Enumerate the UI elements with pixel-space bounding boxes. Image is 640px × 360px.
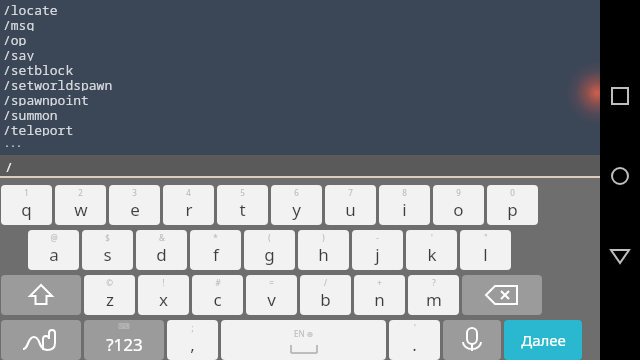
staticText: /	[324, 277, 327, 288]
button[interactable]: 9	[433, 185, 484, 225]
staticText: y	[292, 198, 301, 221]
staticText: 2	[78, 187, 83, 198]
button[interactable]: '	[389, 320, 440, 360]
staticText: '	[414, 322, 416, 333]
button[interactable]: $	[82, 230, 133, 270]
staticText: u	[345, 198, 356, 221]
staticText: +	[377, 277, 382, 288]
staticText: t	[239, 198, 246, 221]
button[interactable]: 5	[217, 185, 268, 225]
button[interactable]: EN ⊕	[221, 320, 386, 360]
staticText: /setblock	[3, 61, 74, 76]
button[interactable]: 4	[163, 185, 214, 225]
staticText: ⌨	[118, 322, 130, 331]
staticText: r	[185, 198, 193, 221]
staticText: !	[162, 277, 165, 288]
button[interactable]: "	[460, 230, 511, 270]
staticText: (	[268, 232, 271, 243]
staticText: /spawnpoint	[3, 91, 89, 106]
button[interactable]: #	[192, 275, 243, 315]
staticText: ?	[432, 277, 436, 288]
button[interactable]: Далее	[504, 320, 582, 360]
staticText: Далее	[521, 330, 566, 350]
button[interactable]: 8	[379, 185, 430, 225]
button[interactable]: @	[28, 230, 79, 270]
staticText: k	[427, 243, 437, 266]
button[interactable]: '	[406, 230, 457, 270]
staticText: 9	[456, 187, 461, 198]
staticText: $	[105, 232, 110, 243]
staticText: b	[320, 288, 331, 311]
staticText: h	[318, 243, 329, 266]
button[interactable]: )	[298, 230, 349, 270]
staticText: ©	[106, 277, 113, 288]
staticText: /summon	[3, 106, 58, 121]
button[interactable]: +	[354, 275, 405, 315]
button[interactable]: -	[352, 230, 403, 270]
button[interactable]: ©	[84, 275, 135, 315]
staticText: f	[213, 243, 219, 266]
staticText: #	[215, 277, 221, 288]
button[interactable]: 2	[55, 185, 106, 225]
button[interactable]: Home	[600, 156, 640, 196]
staticText: ;	[191, 322, 194, 333]
staticText: '	[431, 232, 433, 243]
staticText: /teleport	[3, 121, 74, 136]
button[interactable]: Recent apps	[600, 76, 640, 116]
button[interactable]: Back	[600, 236, 640, 276]
staticText: l	[483, 243, 488, 266]
staticText: p	[507, 198, 518, 221]
button[interactable]: ?	[408, 275, 459, 315]
staticText: 1	[24, 187, 29, 198]
staticText: -	[376, 232, 379, 243]
button[interactable]: Voice input	[443, 320, 501, 360]
button[interactable]: ;	[167, 320, 218, 360]
staticText: s	[103, 243, 112, 266]
staticText: /op	[3, 31, 27, 46]
button[interactable]: =	[246, 275, 297, 315]
button[interactable]: 6	[271, 185, 322, 225]
staticText: 7	[348, 187, 353, 198]
staticText: n	[374, 288, 385, 311]
staticText: 5	[240, 187, 245, 198]
button[interactable]: Backspace	[462, 275, 542, 315]
staticText: "	[484, 232, 488, 243]
staticText: m	[426, 288, 442, 311]
staticText: ,	[190, 333, 195, 356]
button[interactable]: &	[136, 230, 187, 270]
staticText: z	[106, 288, 114, 311]
staticText: EN ⊕	[294, 328, 314, 339]
staticText: 4	[186, 187, 191, 198]
staticText: 8	[402, 187, 407, 198]
button[interactable]: Shift	[1, 275, 81, 315]
staticText: x	[159, 288, 168, 311]
staticText: /say	[3, 46, 35, 61]
staticText: @	[50, 232, 58, 243]
button[interactable]: !	[138, 275, 189, 315]
staticText: )	[322, 232, 325, 243]
staticText: ...	[4, 136, 22, 150]
button[interactable]: *	[190, 230, 241, 270]
staticText: j	[375, 243, 380, 266]
button[interactable]: 0	[487, 185, 538, 225]
staticText: 6	[294, 187, 299, 198]
button[interactable]: 7	[325, 185, 376, 225]
button[interactable]: Handwriting input	[1, 320, 81, 360]
staticText: /setworldspawn	[3, 76, 113, 91]
staticText: q	[21, 198, 32, 221]
button[interactable]: 3	[109, 185, 160, 225]
staticText: .	[412, 333, 417, 356]
staticText: 3	[132, 187, 137, 198]
staticText: /msg	[3, 16, 35, 31]
staticText: =	[269, 277, 274, 288]
button[interactable]: 1	[1, 185, 52, 225]
button[interactable]: ⌨	[84, 320, 164, 360]
button[interactable]: /	[300, 275, 351, 315]
button[interactable]: (	[244, 230, 295, 270]
staticText: w	[74, 198, 88, 221]
staticText: o	[453, 198, 464, 221]
staticText: ?123	[106, 333, 143, 356]
staticText: 0	[510, 187, 515, 198]
staticText: /locate	[3, 1, 58, 16]
button[interactable]: /	[0, 155, 640, 178]
